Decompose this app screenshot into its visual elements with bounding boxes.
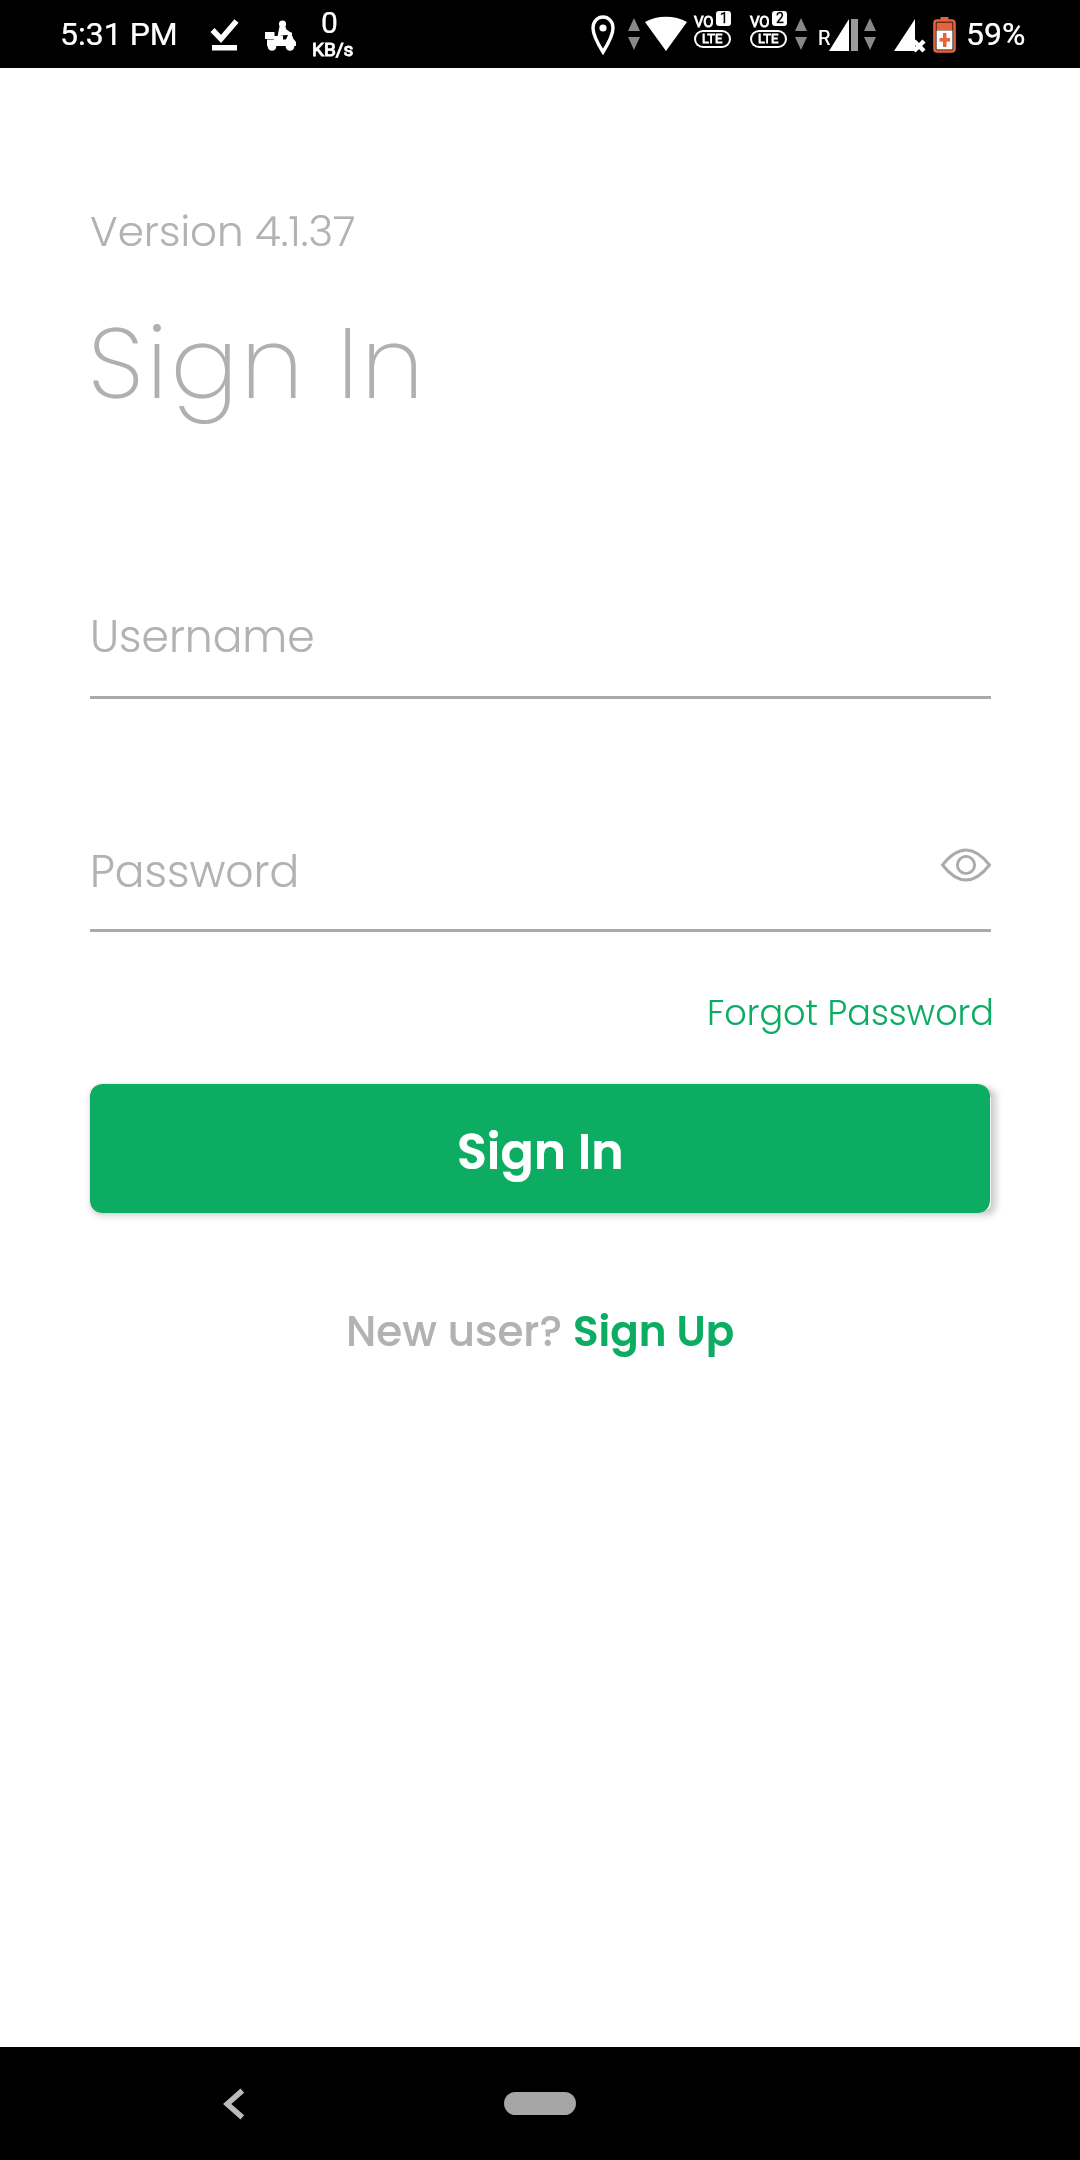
button[interactable]: Forgot Password: [707, 988, 994, 1037]
staticText: VO: [750, 13, 770, 31]
button[interactable]: New user? Sign Up: [346, 1302, 735, 1361]
button[interactable]: Sign In: [90, 1084, 990, 1213]
button[interactable]: Show password: [931, 830, 1001, 900]
staticText: 59%: [966, 15, 1026, 53]
staticText: VO: [694, 13, 714, 31]
button[interactable]: Back: [200, 2069, 270, 2139]
staticText: 0: [321, 5, 338, 40]
staticText: LTE: [758, 32, 779, 45]
staticText: R: [818, 26, 831, 49]
button[interactable]: Home: [504, 2092, 576, 2115]
staticText: Sign In: [457, 1118, 624, 1187]
staticText: 1: [720, 11, 728, 25]
staticText: Password: [90, 841, 300, 903]
button[interactable]: Password field: [90, 832, 991, 932]
staticText: Username: [90, 606, 315, 668]
staticText: Sign In: [88, 293, 427, 433]
button[interactable]: Username field: [90, 600, 991, 699]
staticText: LTE: [702, 32, 723, 45]
staticText: 2: [776, 11, 784, 25]
staticText: Version 4.1.37: [90, 202, 356, 261]
staticText: 5:31 PM: [60, 15, 178, 53]
staticText: KB/s: [312, 38, 354, 60]
